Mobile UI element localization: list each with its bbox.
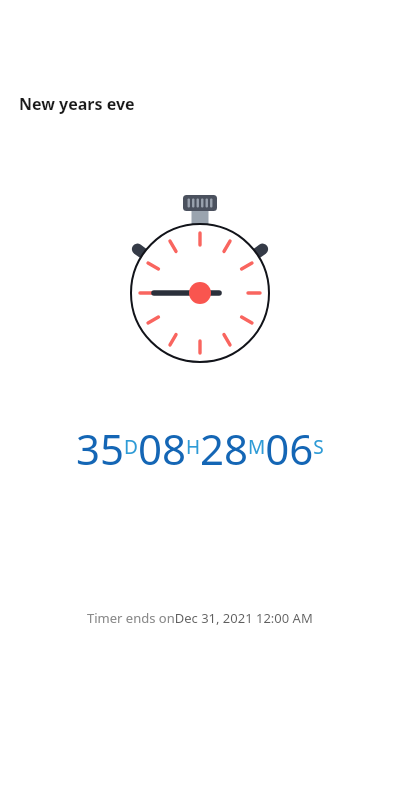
staticText: New years eve <box>19 93 135 115</box>
other: Stopwatch <box>120 190 280 370</box>
staticText: 35D08H28M06S <box>76 420 324 477</box>
staticText: Timer ends onDec 31, 2021 12:00 AM <box>87 609 313 627</box>
